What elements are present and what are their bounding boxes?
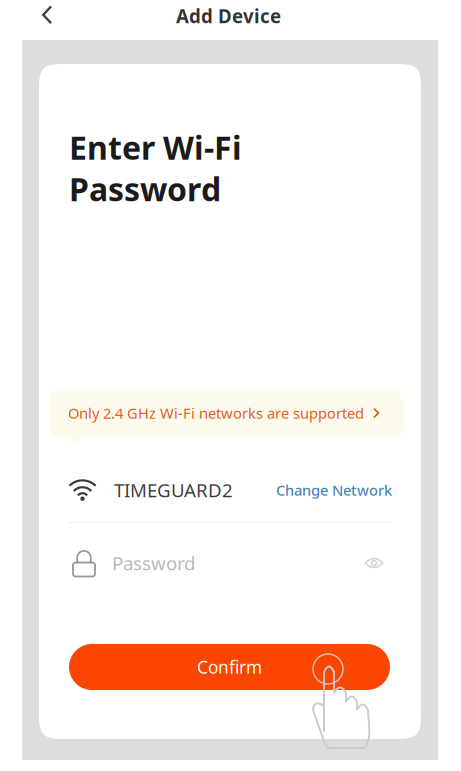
button[interactable]: Only 2.4 GHz Wi-Fi networks are supporte… xyxy=(50,389,404,447)
staticText: Password xyxy=(69,167,221,210)
staticText: Confirm xyxy=(197,655,262,678)
staticText: Password xyxy=(112,551,195,575)
button[interactable]: Back xyxy=(29,0,65,33)
staticText: Add Device xyxy=(176,4,281,28)
button[interactable]: Confirm xyxy=(69,644,390,690)
button[interactable]: Change Network xyxy=(276,475,392,505)
staticText: Change Network xyxy=(276,480,392,500)
staticText: TIMEGUARD2 xyxy=(114,478,233,502)
staticText: Only 2.4 GHz Wi-Fi networks are supporte… xyxy=(68,403,364,423)
staticText: Enter Wi-Fi xyxy=(69,126,242,168)
button[interactable]: Show password xyxy=(359,548,389,578)
